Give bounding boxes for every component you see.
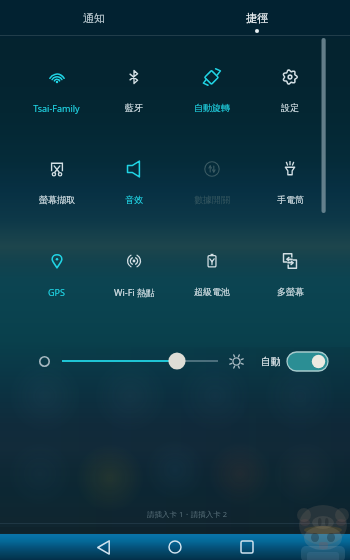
button[interactable]: 螢幕擷取 [18, 160, 95, 207]
staticText: 自動 [261, 355, 281, 368]
button[interactable]: 多螢幕 [251, 252, 329, 299]
button[interactable]: Maximum brightness [224, 349, 248, 373]
staticText: 通知 [83, 11, 105, 25]
button[interactable]: 音效 [95, 160, 173, 207]
staticText: 螢幕擷取 [39, 194, 75, 205]
staticText: Wi-Fi 熱點 [114, 286, 155, 298]
staticText: GPS [48, 286, 65, 298]
button[interactable]: Brightness slider [58, 350, 222, 372]
button[interactable]: Tsai-Family [18, 68, 95, 115]
staticText: 多螢幕 [277, 286, 304, 297]
button[interactable]: 數據開關 [173, 160, 251, 207]
button[interactable]: Home [153, 534, 197, 560]
button[interactable]: 藍牙 [95, 68, 173, 115]
staticText: 數據開關 [194, 194, 230, 205]
staticText: 音效 [125, 194, 143, 205]
staticText: 手電筒 [277, 194, 304, 205]
button[interactable]: Recent apps [225, 534, 269, 560]
button[interactable]: 自動旋轉 [173, 68, 251, 115]
button[interactable]: Wi-Fi 熱點 [95, 252, 173, 299]
button[interactable]: 自動 [261, 350, 328, 372]
button[interactable]: Back [81, 534, 125, 560]
staticText: 捷徑 [246, 11, 268, 25]
staticText: 藍牙 [125, 102, 143, 113]
button[interactable]: 超級電池 [173, 252, 251, 299]
button[interactable]: GPS [18, 252, 95, 299]
staticText: 設定 [281, 102, 299, 113]
button[interactable]: 通知 [49, 0, 139, 34]
staticText: 超級電池 [194, 286, 230, 297]
staticText: 請插入卡 1・請插入卡 2 [12, 509, 350, 519]
button[interactable]: 手電筒 [251, 160, 329, 207]
staticText: Tsai-Family [33, 102, 80, 114]
button[interactable]: 捷徑 [212, 0, 302, 34]
staticText: 自動旋轉 [194, 102, 230, 113]
button[interactable]: 設定 [251, 68, 329, 115]
button[interactable]: Minimum brightness [32, 349, 56, 373]
